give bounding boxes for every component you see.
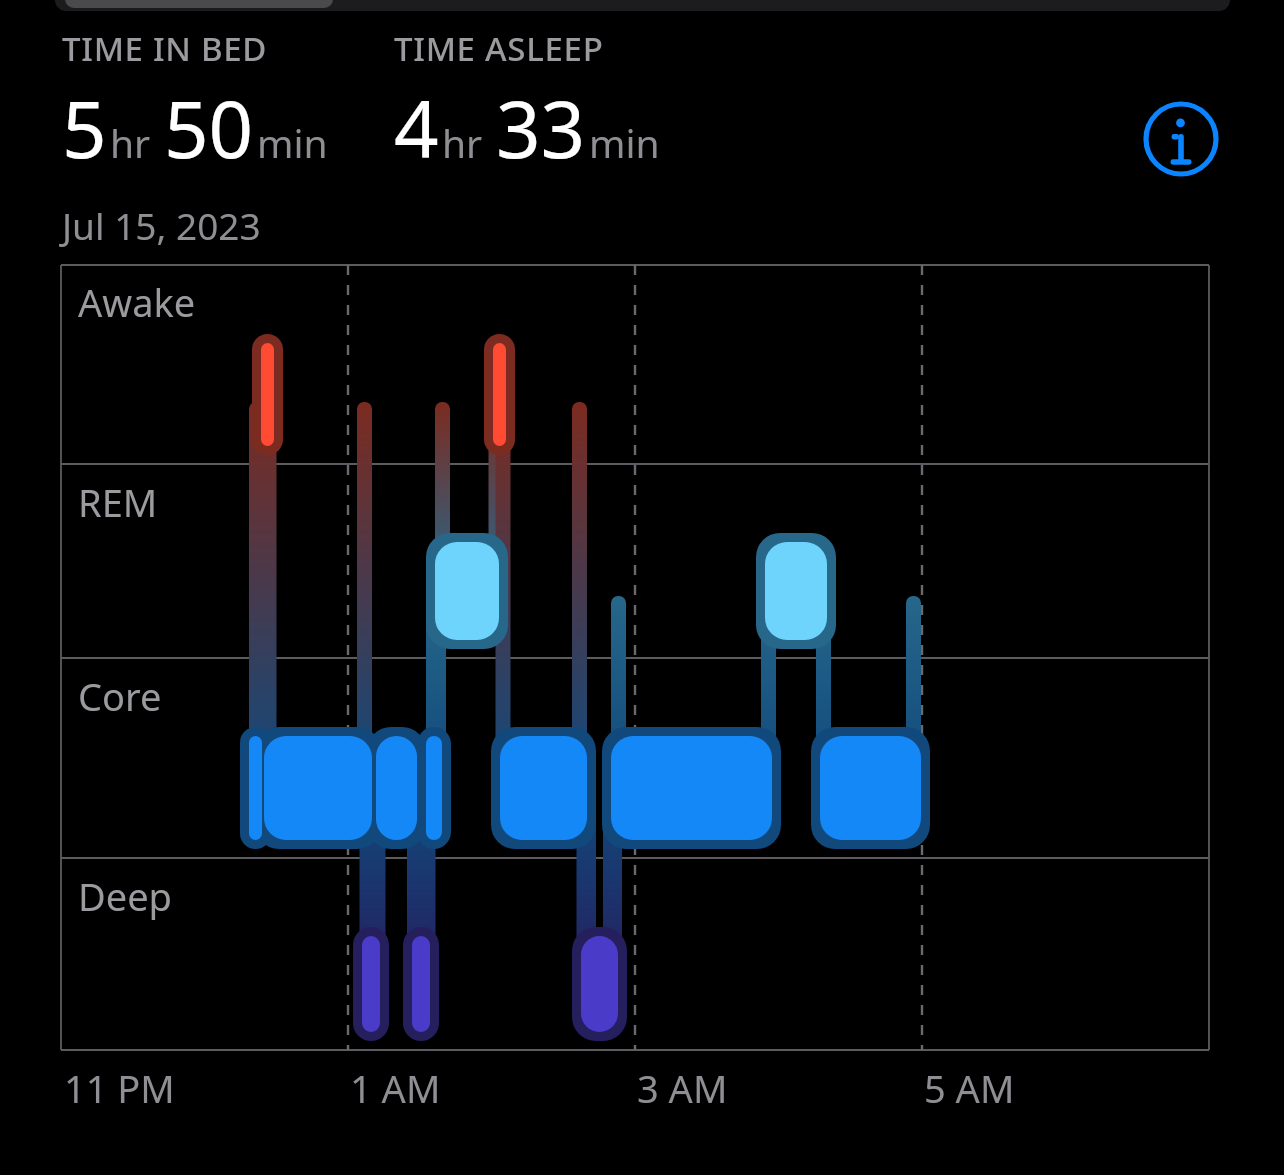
staticText: TIME ASLEEP	[394, 26, 604, 71]
staticText: hr	[442, 116, 483, 169]
staticText: 11 PM	[64, 1062, 175, 1114]
staticText: REM	[78, 476, 158, 528]
staticText: TIME IN BED	[62, 26, 268, 71]
button[interactable]	[65, 0, 333, 8]
staticText: 33	[496, 75, 586, 181]
button[interactable]: Info about sleep stages	[1142, 100, 1220, 178]
staticText: 3 AM	[637, 1062, 728, 1114]
staticText: Jul 15, 2023	[62, 200, 261, 250]
staticText: 5	[62, 75, 107, 181]
staticText: min	[257, 116, 328, 169]
button[interactable]	[55, 0, 1230, 11]
staticText: Core	[78, 670, 162, 722]
staticText: 1 AM	[350, 1062, 441, 1114]
staticText: hr	[110, 116, 151, 169]
staticText: 4	[394, 75, 439, 181]
staticText: min	[589, 116, 660, 169]
staticText: Deep	[78, 870, 172, 922]
staticText: 5 AM	[924, 1062, 1015, 1114]
staticText: Awake	[78, 276, 196, 328]
staticText: 50	[164, 75, 254, 181]
